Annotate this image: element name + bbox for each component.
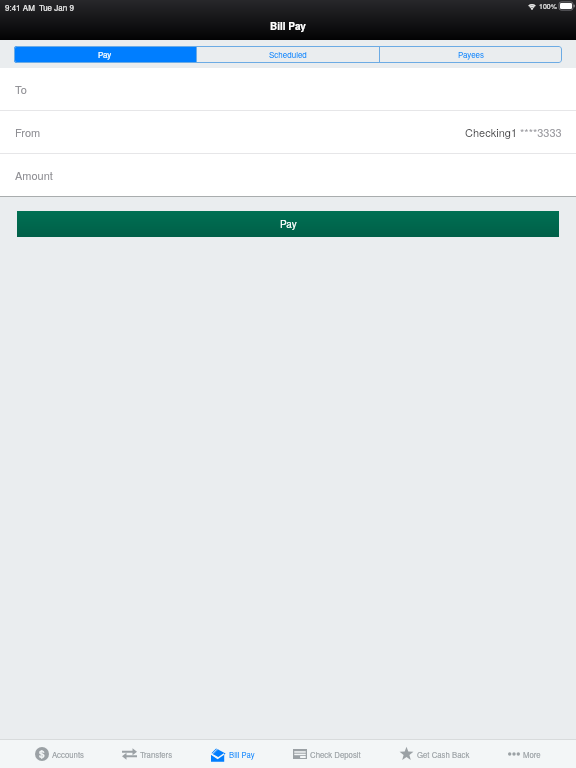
staticText: Check Deposit: [310, 749, 361, 760]
button[interactable]: $: [35, 740, 84, 768]
button[interactable]: To: [0, 68, 576, 110]
staticText: To: [15, 81, 27, 97]
staticText: From: [15, 124, 41, 140]
staticText: Accounts: [52, 749, 84, 760]
button[interactable]: Pay: [17, 211, 559, 237]
staticText: 9:41 AM: [5, 2, 35, 13]
staticText: 100%: [539, 1, 557, 11]
staticText: Tue Jan 9: [39, 2, 74, 13]
button[interactable]: Get Cash Back: [399, 740, 470, 768]
button[interactable]: Amount: [0, 154, 576, 196]
button[interactable]: Scheduled: [197, 46, 379, 63]
button[interactable]: Payees: [380, 46, 562, 63]
staticText: Payees: [458, 49, 485, 60]
staticText: Pay: [98, 49, 112, 60]
staticText: Checking1 ****3333: [465, 124, 562, 140]
button[interactable]: Pay: [14, 46, 196, 63]
staticText: Scheduled: [269, 49, 307, 60]
staticText: More: [523, 749, 541, 760]
staticText: Get Cash Back: [417, 749, 470, 760]
staticText: Transfers: [140, 749, 173, 760]
button[interactable]: Bill Pay: [211, 740, 255, 768]
staticText: $: [39, 747, 45, 761]
staticText: Bill Pay: [270, 19, 306, 33]
button[interactable]: Transfers: [122, 740, 173, 768]
button[interactable]: More: [508, 740, 541, 768]
button[interactable]: Check Deposit: [293, 740, 361, 768]
staticText: Amount: [15, 167, 53, 183]
button[interactable]: From: [0, 111, 576, 153]
staticText: Pay: [280, 217, 297, 231]
staticText: Bill Pay: [229, 749, 255, 760]
